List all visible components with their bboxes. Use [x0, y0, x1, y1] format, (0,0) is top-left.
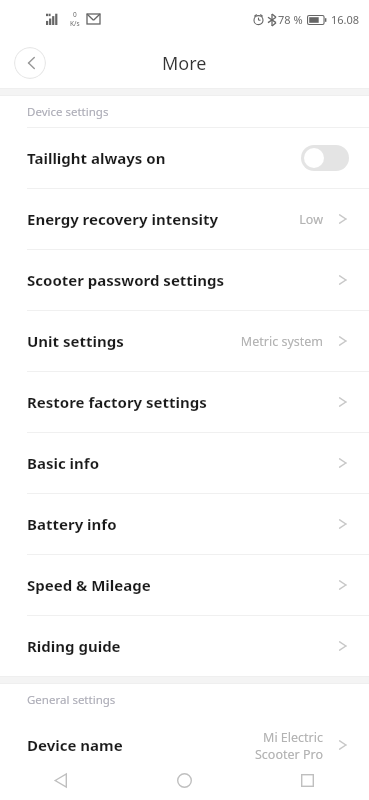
- staticText: Speed & Mileage: [27, 575, 337, 595]
- staticText: Scooter password settings: [27, 270, 337, 290]
- staticText: Mi Electric Scooter Pro: [254, 729, 323, 762]
- staticText: Restore factory settings: [27, 392, 337, 412]
- staticText: Energy recovery intensity: [27, 209, 299, 229]
- staticText: Riding guide: [27, 636, 337, 656]
- staticText: Device settings: [27, 104, 109, 120]
- staticText: Battery info: [27, 514, 337, 534]
- button[interactable]: Unit settings: [0, 311, 369, 371]
- staticText: Unit settings: [27, 331, 240, 351]
- staticText: 16.08: [331, 12, 360, 27]
- button[interactable]: Restore factory settings: [0, 372, 369, 432]
- button[interactable]: Home: [123, 760, 246, 800]
- staticText: Taillight always on: [27, 148, 301, 168]
- button[interactable]: Device name: [0, 715, 369, 775]
- button[interactable]: Taillight always on toggle: [301, 145, 349, 171]
- button[interactable]: Energy recovery intensity: [0, 189, 369, 249]
- staticText: General settings: [27, 692, 116, 708]
- button[interactable]: Back: [14, 47, 46, 79]
- staticText: Metric system: [240, 333, 323, 350]
- button[interactable]: Back: [0, 760, 123, 800]
- staticText: Basic info: [27, 453, 337, 473]
- button[interactable]: Scooter password settings: [0, 250, 369, 310]
- staticText: 0: [73, 10, 77, 19]
- staticText: Device name: [27, 735, 254, 755]
- staticText: 78 %: [278, 12, 303, 27]
- button[interactable]: Riding guide: [0, 616, 369, 676]
- button[interactable]: Basic info: [0, 433, 369, 493]
- button[interactable]: Speed & Mileage: [0, 555, 369, 615]
- staticText: Low: [299, 211, 323, 228]
- staticText: K/s: [70, 19, 80, 28]
- button[interactable]: Recents: [246, 760, 369, 800]
- button[interactable]: Taillight always on: [0, 128, 369, 188]
- button[interactable]: Battery info: [0, 494, 369, 554]
- staticText: More: [162, 51, 207, 76]
